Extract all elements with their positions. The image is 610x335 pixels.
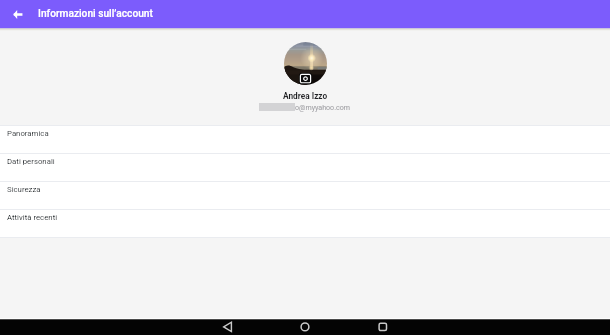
staticText: Panoramica bbox=[7, 129, 49, 138]
button[interactable]: Back bbox=[0, 0, 34, 28]
button[interactable]: Dati personali bbox=[0, 154, 610, 181]
button[interactable]: Change profile photo bbox=[284, 42, 327, 85]
staticText: o@myyahoo.com bbox=[295, 103, 351, 111]
staticText: Informazioni sull’account bbox=[38, 8, 153, 20]
staticText: Sicurezza bbox=[7, 185, 41, 194]
staticText: Attività recenti bbox=[7, 213, 58, 222]
button[interactable]: Attività recenti bbox=[0, 210, 610, 237]
staticText: Dati personali bbox=[7, 157, 55, 166]
staticText: Andrea Izzo bbox=[283, 91, 328, 101]
button[interactable]: Panoramica bbox=[0, 126, 610, 153]
button[interactable]: Sicurezza bbox=[0, 182, 610, 209]
